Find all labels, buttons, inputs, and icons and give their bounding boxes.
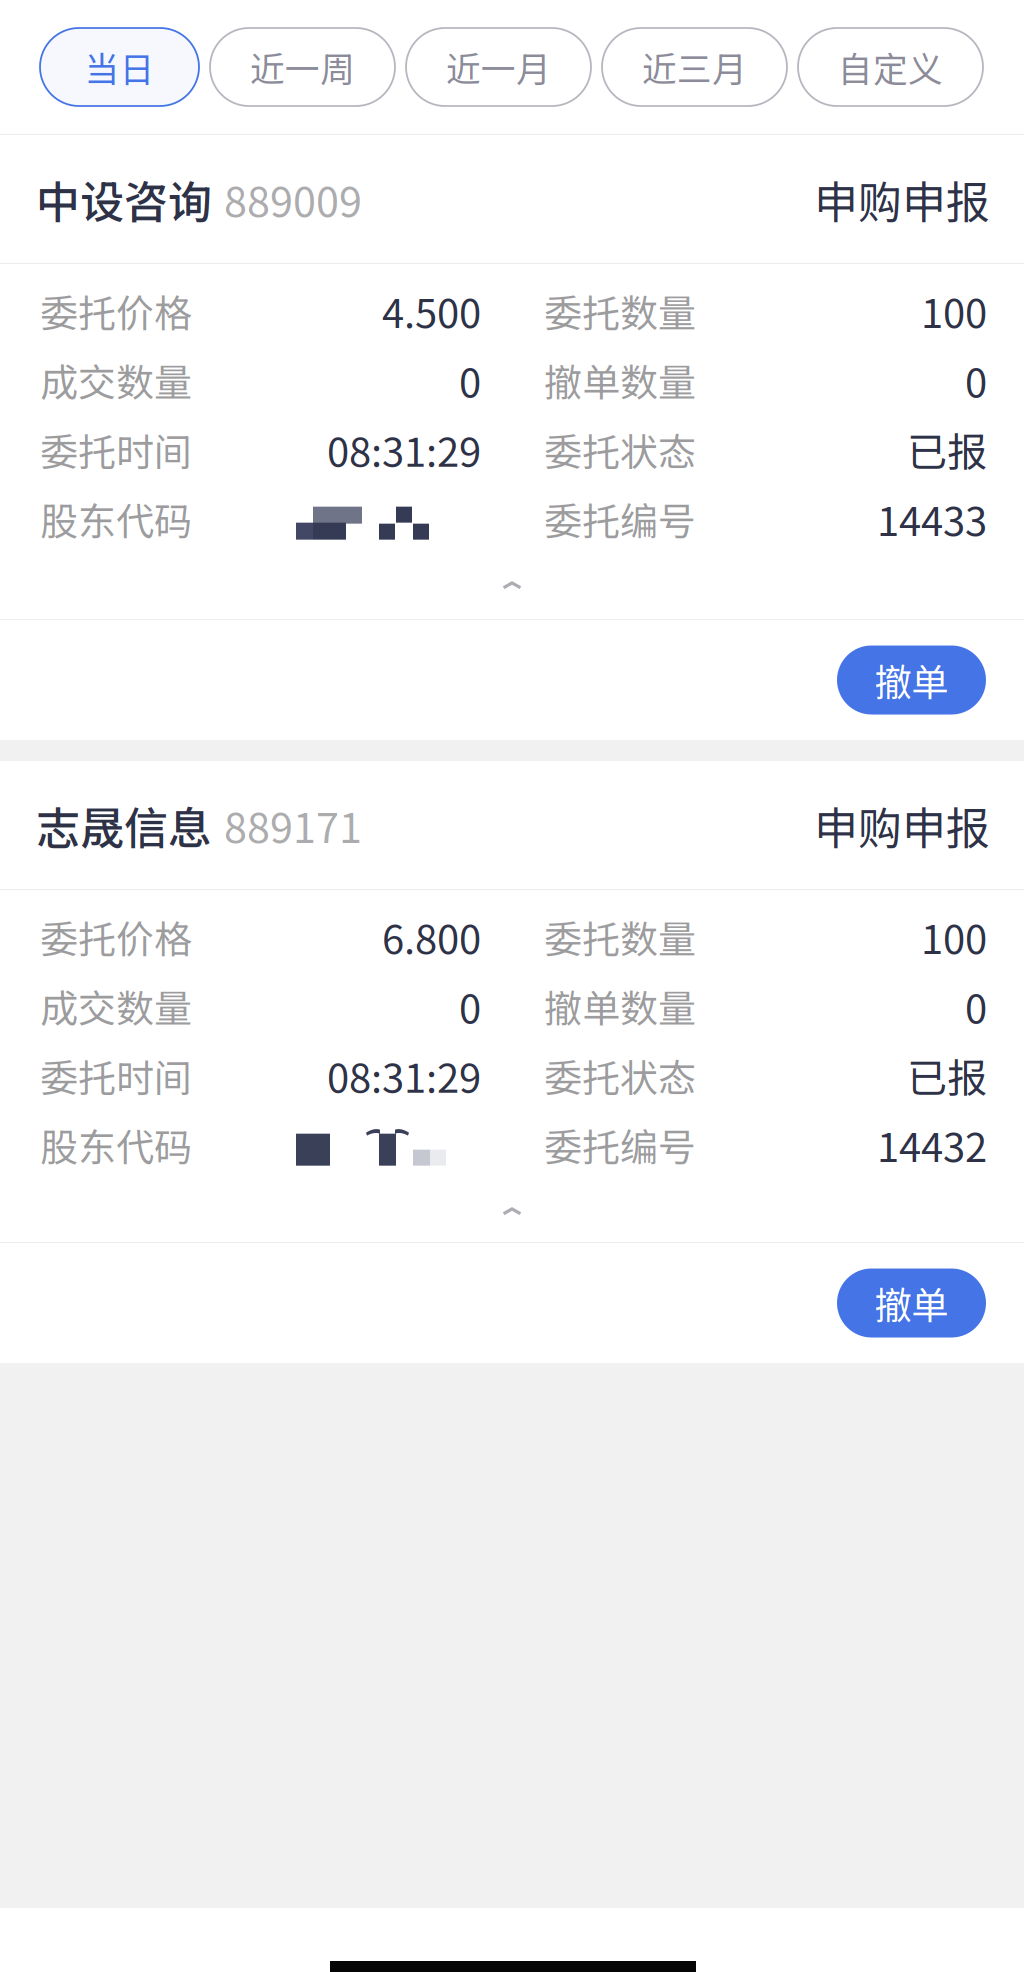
- staticText: 自定义: [838, 42, 943, 92]
- staticText: 当日: [84, 42, 154, 92]
- staticText: 申购申报: [814, 167, 990, 231]
- staticText: 08:31:29: [327, 1046, 481, 1104]
- button[interactable]: 近一周: [210, 28, 395, 106]
- staticText: 委托状态: [544, 1048, 696, 1103]
- button[interactable]: 当日: [40, 28, 199, 106]
- staticText: 委托数量: [544, 283, 696, 338]
- staticText: 中设咨询: [36, 167, 212, 231]
- button[interactable]: 撤单: [837, 1268, 986, 1337]
- staticText: 股东代码: [40, 1117, 192, 1172]
- staticText: 0: [965, 351, 987, 409]
- staticText: 已报: [907, 420, 987, 478]
- staticText: 委托价格: [40, 909, 192, 964]
- staticText: 委托数量: [544, 909, 696, 964]
- staticText: 委托价格: [40, 283, 192, 338]
- button[interactable]: 志晟信息: [0, 761, 1024, 889]
- staticText: 4.500: [382, 282, 481, 340]
- staticText: 撤单数量: [544, 978, 696, 1033]
- staticText: 股东代码: [40, 491, 192, 546]
- staticText: 委托状态: [544, 422, 696, 477]
- button[interactable]: 收起: [502, 553, 522, 589]
- staticText: 成交数量: [40, 352, 192, 407]
- staticText: 08:31:29: [327, 420, 481, 478]
- button[interactable]: 撤单: [837, 645, 986, 714]
- staticText: 撤单: [874, 1276, 948, 1330]
- staticText: 14433: [877, 490, 987, 548]
- button[interactable]: 中设咨询: [0, 135, 1024, 263]
- staticText: 委托时间: [40, 422, 192, 477]
- staticText: 6.800: [382, 908, 481, 966]
- staticText: 撤单: [874, 653, 948, 707]
- staticText: 委托编号: [544, 1117, 696, 1172]
- staticText: 已报: [907, 1046, 987, 1104]
- button[interactable]: 近一月: [406, 28, 591, 106]
- staticText: 889171: [224, 795, 362, 855]
- staticText: 100: [921, 908, 987, 966]
- button[interactable]: 近三月: [602, 28, 787, 106]
- staticText: 撤单数量: [544, 352, 696, 407]
- button[interactable]: 收起: [502, 1179, 522, 1215]
- staticText: 0: [459, 977, 481, 1035]
- button[interactable]: 自定义: [798, 28, 983, 106]
- staticText: 成交数量: [40, 978, 192, 1033]
- staticText: 100: [921, 282, 987, 340]
- staticText: 近一月: [446, 42, 551, 92]
- staticText: 近三月: [642, 42, 747, 92]
- staticText: 0: [965, 977, 987, 1035]
- staticText: 14432: [877, 1116, 987, 1174]
- staticText: 委托时间: [40, 1048, 192, 1103]
- staticText: 志晟信息: [36, 793, 212, 857]
- staticText: 889009: [224, 169, 362, 229]
- staticText: 申购申报: [814, 793, 990, 857]
- staticText: 近一周: [250, 42, 355, 92]
- staticText: 委托编号: [544, 491, 696, 546]
- staticText: 0: [459, 351, 481, 409]
